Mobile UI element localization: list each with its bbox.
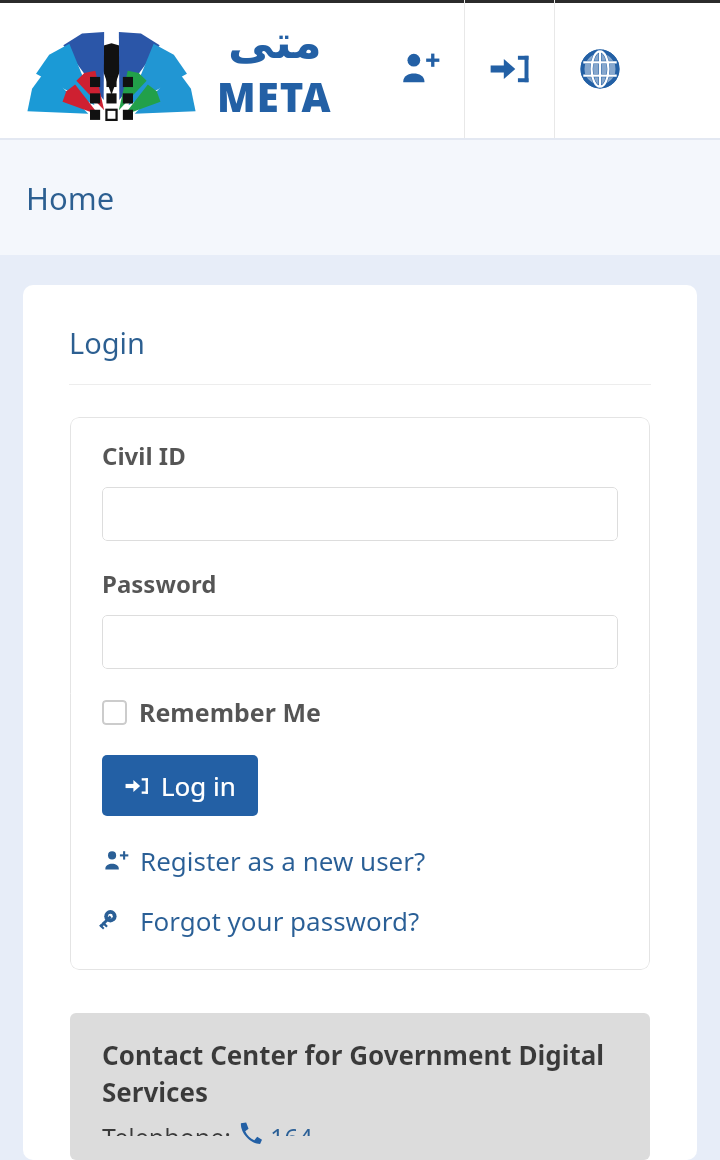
staticText: Civil ID	[102, 439, 186, 472]
button[interactable]: Register	[375, 0, 464, 138]
button[interactable]: Remember Me	[102, 695, 329, 729]
staticText: Password	[102, 567, 217, 600]
staticText: Register as a new user?	[140, 843, 426, 878]
button[interactable]: Log in	[102, 755, 258, 816]
staticText: Forgot your password?	[140, 903, 420, 938]
button[interactable]	[102, 615, 618, 669]
staticText: Telephone:	[102, 1120, 238, 1136]
button[interactable]	[102, 487, 618, 541]
staticText: Contact Center for Government Digital Se…	[102, 1037, 630, 1110]
button[interactable]: Log in	[465, 0, 554, 138]
staticText: META	[217, 69, 332, 123]
button[interactable]: Language	[555, 0, 644, 138]
staticText: Log in	[161, 768, 236, 803]
staticText: Remember Me	[139, 695, 321, 729]
staticText: 164	[270, 1120, 313, 1136]
staticText: متى	[228, 15, 322, 69]
button[interactable]: Register as a new user?	[102, 843, 426, 878]
staticText: Login	[69, 323, 145, 362]
button[interactable]: Forgot your password?	[102, 903, 420, 938]
staticText: Home	[26, 177, 115, 219]
